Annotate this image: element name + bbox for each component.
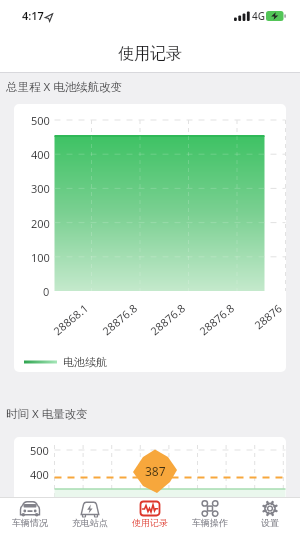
staticText: 28876 xyxy=(251,300,284,332)
staticText: 充电站点 xyxy=(72,517,108,528)
staticText: 400 xyxy=(30,467,49,481)
staticText: 使用记录 xyxy=(132,517,168,528)
staticText: 28876.8 xyxy=(196,300,236,337)
staticText: 300 xyxy=(31,181,50,195)
staticText: 使用记录 xyxy=(118,44,182,64)
staticText: 总里程 X 电池续航改变 xyxy=(6,79,123,95)
staticText: 28876.8 xyxy=(99,300,139,337)
button[interactable]: 设置 xyxy=(240,498,300,533)
staticText: 100 xyxy=(31,250,50,264)
staticText: 车辆操作 xyxy=(192,517,228,528)
staticText: 时间 X 电量改变 xyxy=(6,406,88,422)
staticText: 车辆情况 xyxy=(12,517,48,528)
staticText: 0 xyxy=(43,284,50,298)
staticText: 4:17 xyxy=(22,8,44,22)
staticText: 28876.8 xyxy=(147,300,187,337)
staticText: 200 xyxy=(31,216,50,230)
staticText: 4G xyxy=(252,9,265,22)
button[interactable]: 使用记录 xyxy=(120,498,180,533)
staticText: 设置 xyxy=(261,517,279,528)
staticText: 28868.1 xyxy=(50,300,90,337)
staticText: 电池续航 xyxy=(63,355,107,369)
button[interactable]: 车辆情况 xyxy=(0,498,60,533)
button[interactable]: 车辆操作 xyxy=(180,498,240,533)
staticText: 500 xyxy=(30,443,49,457)
staticText: 500 xyxy=(31,113,50,127)
staticText: 400 xyxy=(31,147,50,161)
button[interactable]: 充电站点 xyxy=(60,498,120,533)
staticText: 387 xyxy=(145,463,166,479)
